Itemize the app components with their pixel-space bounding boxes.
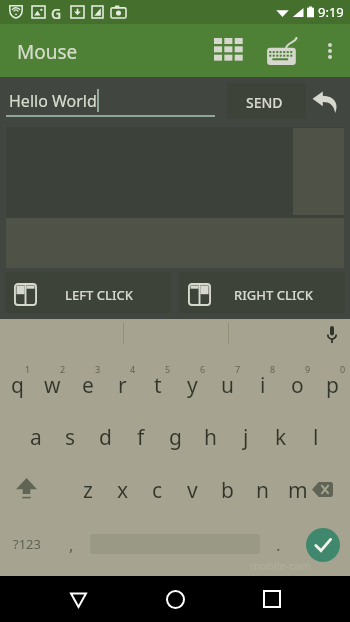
staticText: v xyxy=(187,476,198,505)
button[interactable]: a xyxy=(18,412,53,462)
staticText: LEFT CLICK xyxy=(65,286,134,304)
button[interactable]: o xyxy=(280,360,315,410)
button[interactable]: Home xyxy=(152,576,198,622)
staticText: Hello World xyxy=(9,90,97,112)
staticText: u xyxy=(221,371,234,400)
button[interactable]: l xyxy=(298,412,333,462)
button[interactable]: q xyxy=(0,360,35,410)
staticText: a xyxy=(30,423,42,452)
staticText: RIGHT CLICK xyxy=(234,286,313,304)
button[interactable]: Recents xyxy=(249,576,295,622)
staticText: 5 xyxy=(165,363,171,375)
button[interactable]: g xyxy=(158,412,193,462)
staticText: p xyxy=(326,371,339,400)
staticText: h xyxy=(204,423,217,452)
staticText: ?123 xyxy=(13,535,41,553)
button[interactable]: z xyxy=(70,465,105,515)
button[interactable]: Back xyxy=(55,576,101,622)
button[interactable]: c xyxy=(140,465,175,515)
button[interactable]: x xyxy=(105,465,140,515)
button[interactable]: Delete xyxy=(298,465,350,515)
button[interactable]: h xyxy=(193,412,228,462)
button[interactable]: SEND xyxy=(227,83,306,119)
staticText: 7 xyxy=(235,363,241,375)
staticText: 0 xyxy=(340,363,346,375)
button[interactable]: Undo xyxy=(305,83,345,121)
staticText: b xyxy=(221,476,234,505)
staticText: 4 xyxy=(130,363,136,375)
button[interactable]: Voice input xyxy=(313,319,350,350)
staticText: 9:19 xyxy=(318,3,344,21)
staticText: x xyxy=(117,476,129,505)
button[interactable]: RIGHT CLICK xyxy=(179,272,345,313)
staticText: s xyxy=(65,423,76,452)
button[interactable]: Keyboard xyxy=(258,26,306,75)
button[interactable]: . xyxy=(264,519,292,569)
button[interactable]: w xyxy=(35,360,70,410)
staticText: c xyxy=(152,476,163,505)
button[interactable]: y xyxy=(175,360,210,410)
button[interactable]: t xyxy=(140,360,175,410)
staticText: o xyxy=(291,371,304,400)
button[interactable]: n xyxy=(245,465,280,515)
staticText: l xyxy=(313,423,319,452)
staticText: k xyxy=(275,423,287,452)
button[interactable]: More options xyxy=(313,34,346,67)
button[interactable]: b xyxy=(210,465,245,515)
staticText: . xyxy=(276,533,281,556)
staticText: e xyxy=(82,371,94,400)
button[interactable]: d xyxy=(88,412,123,462)
staticText: 2 xyxy=(60,363,66,375)
button[interactable]: e xyxy=(70,360,105,410)
staticText: mobile-cam xyxy=(250,558,311,573)
button[interactable]: , xyxy=(56,519,86,569)
staticText: 3 xyxy=(95,363,101,375)
button[interactable]: u xyxy=(210,360,245,410)
staticText: 9 xyxy=(305,363,311,375)
button[interactable]: Enter xyxy=(306,528,340,562)
staticText: t xyxy=(154,371,162,400)
button[interactable]: Shift xyxy=(0,465,52,515)
button[interactable]: LEFT CLICK xyxy=(5,272,171,313)
staticText: r xyxy=(118,371,127,400)
staticText: n xyxy=(256,476,269,505)
button[interactable]: r xyxy=(105,360,140,410)
staticText: g xyxy=(169,423,182,452)
button[interactable]: i xyxy=(245,360,280,410)
staticText: d xyxy=(99,423,112,452)
button[interactable]: p xyxy=(315,360,350,410)
staticText: j xyxy=(243,423,249,452)
button[interactable]: ?123 xyxy=(0,519,54,569)
button[interactable]: Keypad xyxy=(205,28,253,73)
staticText: 8 xyxy=(270,363,276,375)
button[interactable]: s xyxy=(53,412,88,462)
button[interactable]: k xyxy=(263,412,298,462)
staticText: 1 xyxy=(25,363,31,375)
staticText: G xyxy=(51,4,62,23)
staticText: q xyxy=(11,371,24,400)
staticText: f xyxy=(137,423,145,452)
staticText: i xyxy=(260,371,266,400)
staticText: , xyxy=(69,533,74,556)
staticText: SEND xyxy=(246,93,283,112)
staticText: z xyxy=(83,476,93,505)
staticText: y xyxy=(187,371,198,400)
staticText: Mouse xyxy=(17,39,78,65)
staticText: w xyxy=(44,371,61,400)
staticText: 6 xyxy=(200,363,206,375)
button[interactable]: m xyxy=(280,465,315,515)
button[interactable]: f xyxy=(123,412,158,462)
staticText: m xyxy=(288,476,308,505)
button[interactable]: j xyxy=(228,412,263,462)
button[interactable]: v xyxy=(175,465,210,515)
